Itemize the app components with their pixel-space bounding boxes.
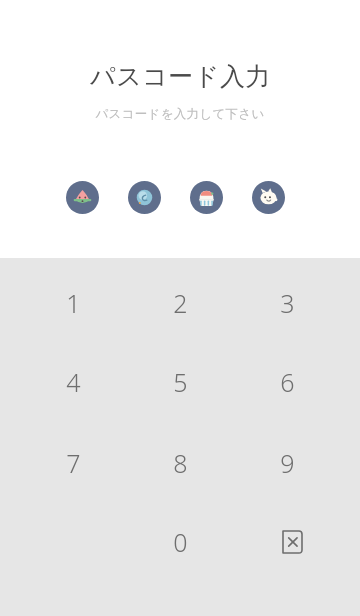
staticText: 6 — [280, 365, 295, 399]
button[interactable]: 1 — [23, 268, 123, 338]
staticText: 5 — [173, 365, 188, 399]
button[interactable]: 2 — [130, 268, 230, 338]
button[interactable]: 0 — [130, 507, 230, 577]
staticText: パスコードを入力して下さい — [95, 106, 265, 122]
staticText: 9 — [280, 446, 295, 480]
staticText: 2 — [173, 286, 188, 320]
staticText: 8 — [173, 446, 188, 480]
staticText: 3 — [280, 286, 295, 320]
button[interactable]: 4 — [23, 347, 123, 417]
button[interactable]: 5 — [130, 347, 230, 417]
button[interactable]: Cat — [252, 181, 285, 214]
button[interactable]: 7 — [23, 428, 123, 498]
button[interactable]: 3 — [237, 268, 337, 338]
button[interactable]: Water drop — [128, 181, 161, 214]
staticText: 7 — [66, 446, 81, 480]
button[interactable]: 8 — [130, 428, 230, 498]
button[interactable]: 9 — [237, 428, 337, 498]
staticText: 0 — [173, 525, 188, 559]
button[interactable]: Backspace — [237, 507, 337, 577]
button[interactable]: Watermelon — [66, 181, 99, 214]
staticText: 4 — [66, 365, 81, 399]
button[interactable]: Shaved ice — [190, 181, 223, 214]
button[interactable]: 6 — [237, 347, 337, 417]
staticText: パスコード入力 — [90, 61, 271, 92]
staticText: 1 — [66, 286, 81, 320]
